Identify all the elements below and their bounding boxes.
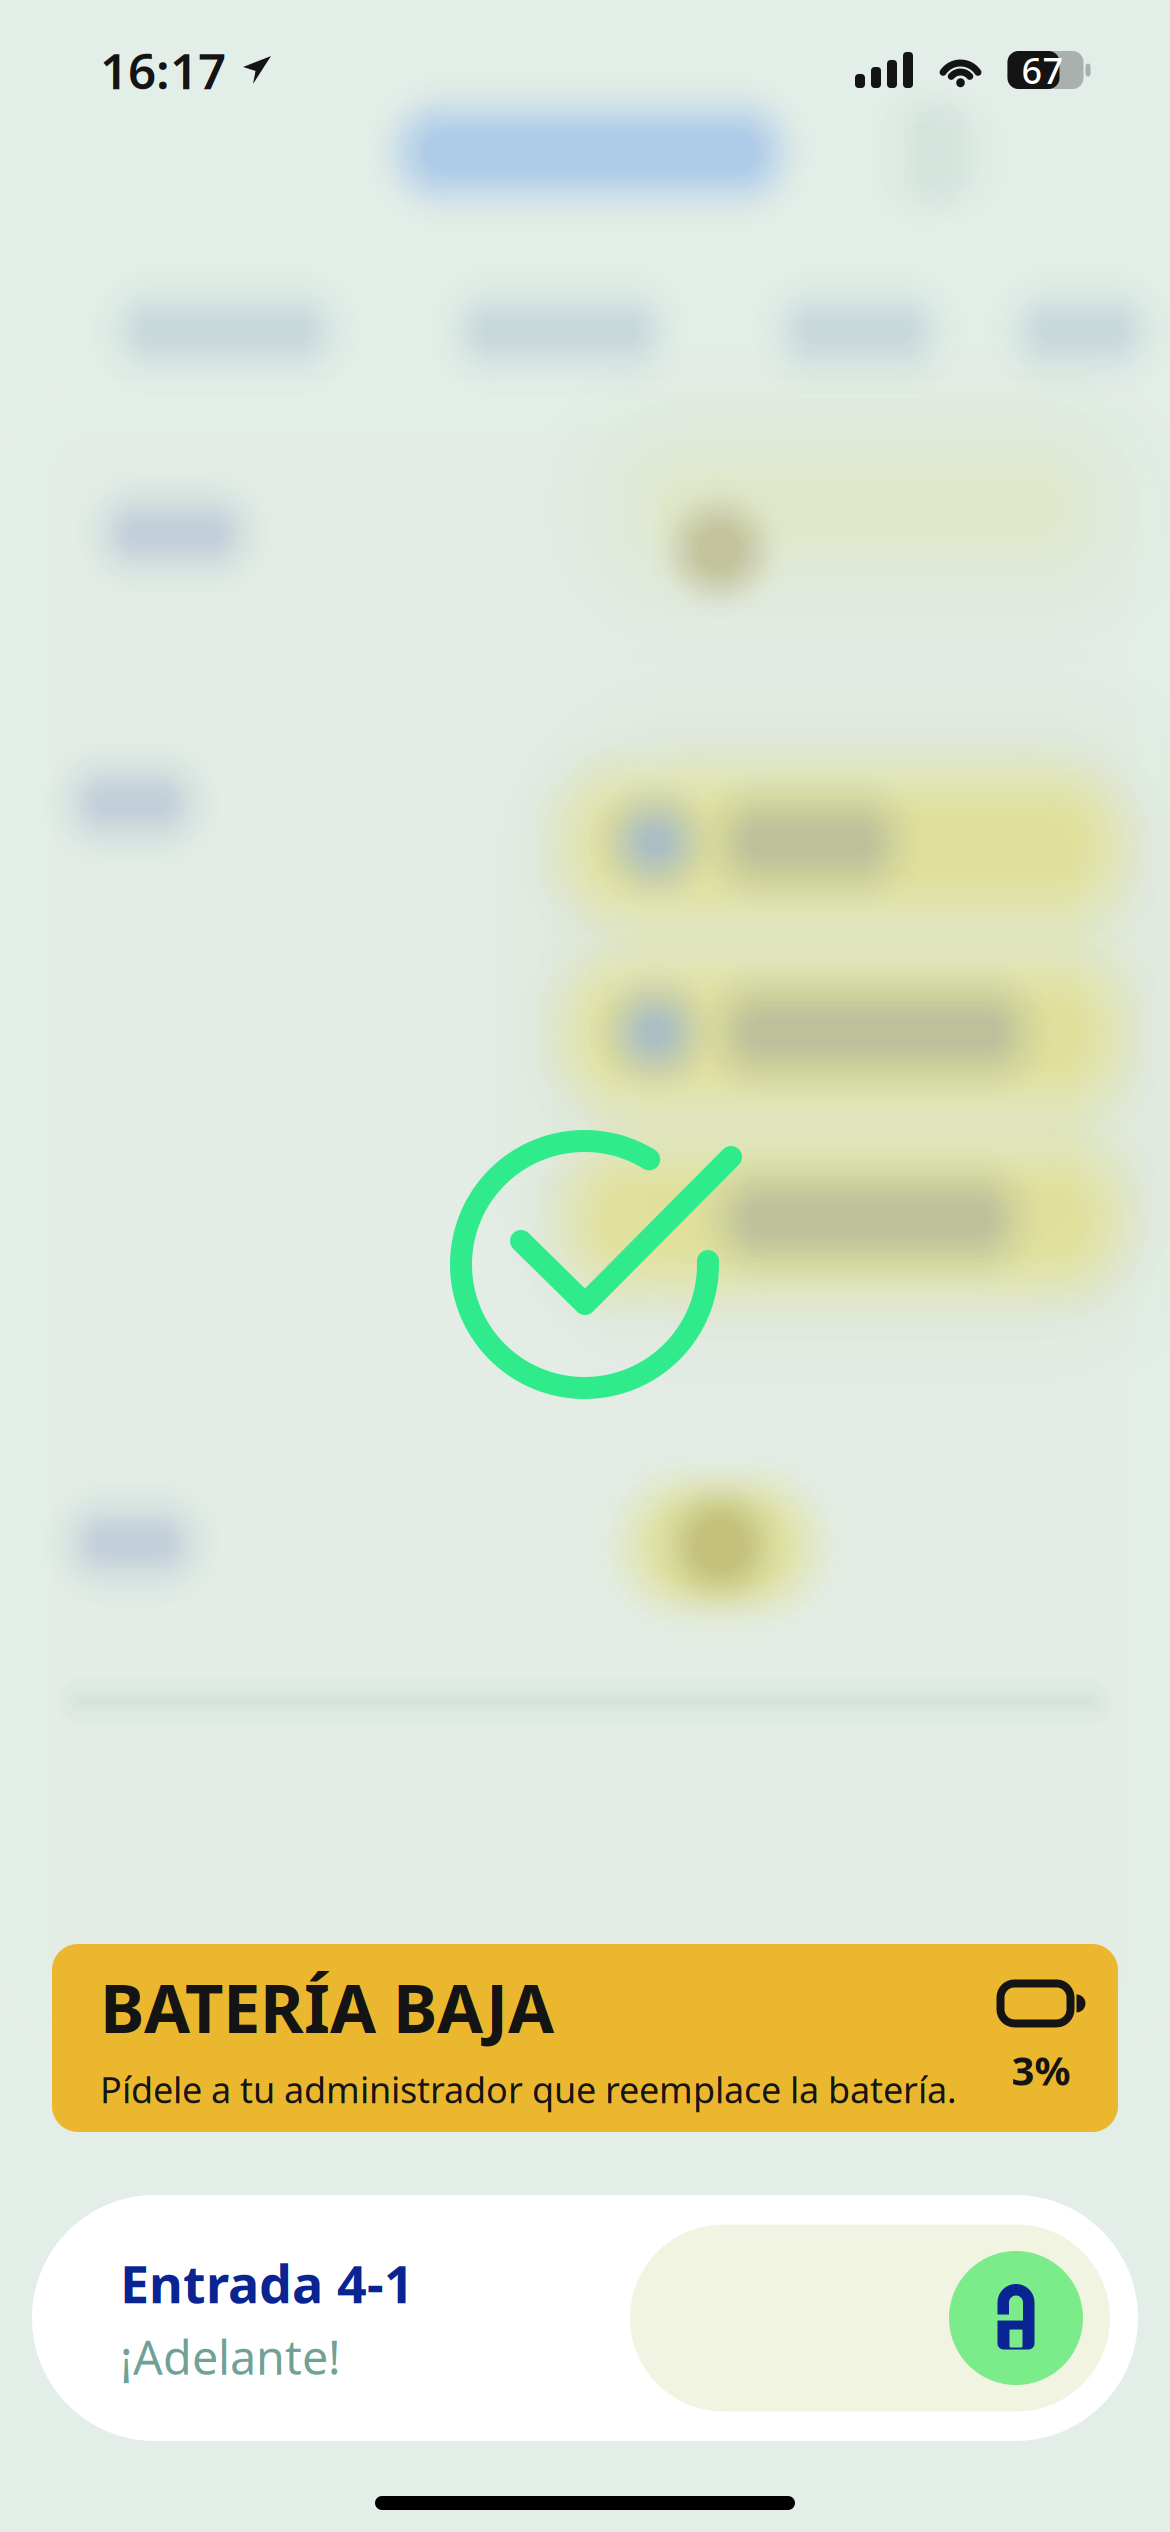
staticText: Pídele a tu administrador que reemplace … [100,2065,957,2113]
button[interactable]: BATERÍA BAJA [52,1944,1118,2132]
button[interactable]: Entrada 4-1 [32,2195,1138,2441]
staticText: ¡Adelante! [120,2325,341,2387]
staticText: 67 [1021,46,1063,94]
staticText: 3% [1011,2043,1070,2096]
staticText: BATERÍA BAJA [100,1963,554,2051]
staticText: Entrada 4-1 [120,2248,414,2318]
staticText: 16:17 [100,37,226,103]
